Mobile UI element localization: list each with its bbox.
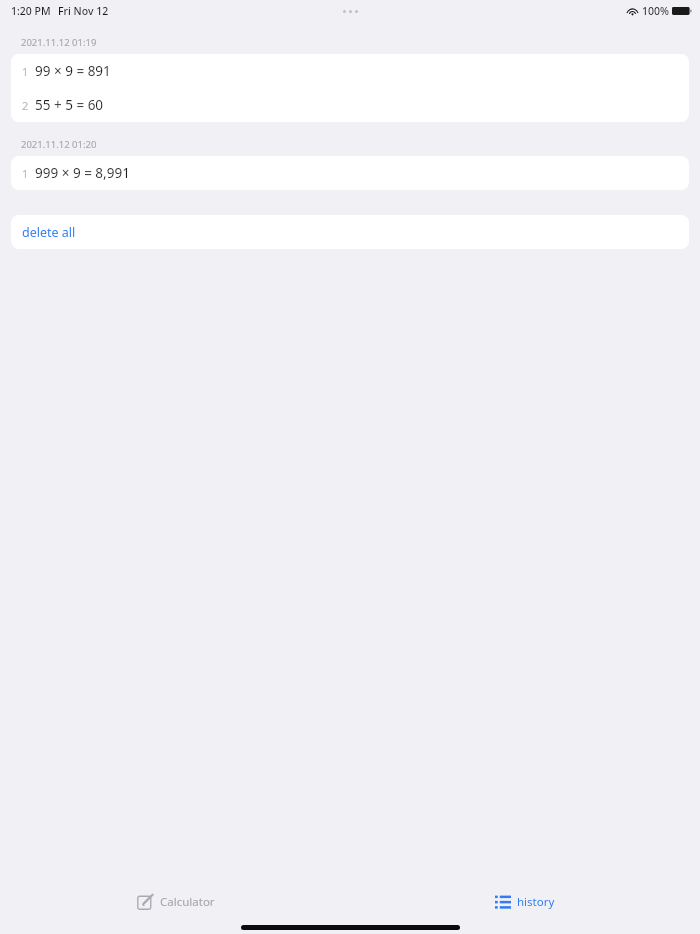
button[interactable]: 1 — [11, 156, 689, 190]
staticText: 2 — [22, 98, 29, 113]
button[interactable]: history — [350, 884, 700, 920]
staticText: delete all — [22, 224, 76, 241]
button[interactable]: 1 — [11, 54, 689, 88]
button[interactable]: Calculator — [0, 884, 350, 920]
staticText: 2021.11.12 01:20 — [21, 138, 97, 151]
staticText: Fri Nov 12 — [58, 4, 109, 18]
staticText: 1 — [22, 64, 29, 79]
staticText: 99 × 9 = 891 — [35, 62, 111, 80]
staticText: Calculator — [160, 894, 215, 910]
staticText: 100% — [642, 4, 669, 18]
button[interactable]: 2 — [11, 88, 689, 122]
staticText: 1 — [22, 166, 29, 181]
staticText: 999 × 9 = 8,991 — [35, 164, 130, 182]
staticText: 1:20 PM — [11, 4, 51, 18]
staticText: history — [517, 894, 555, 910]
staticText: 2021.11.12 01:19 — [21, 36, 97, 49]
button[interactable]: delete all — [11, 215, 689, 249]
staticText: 55 + 5 = 60 — [35, 96, 104, 114]
